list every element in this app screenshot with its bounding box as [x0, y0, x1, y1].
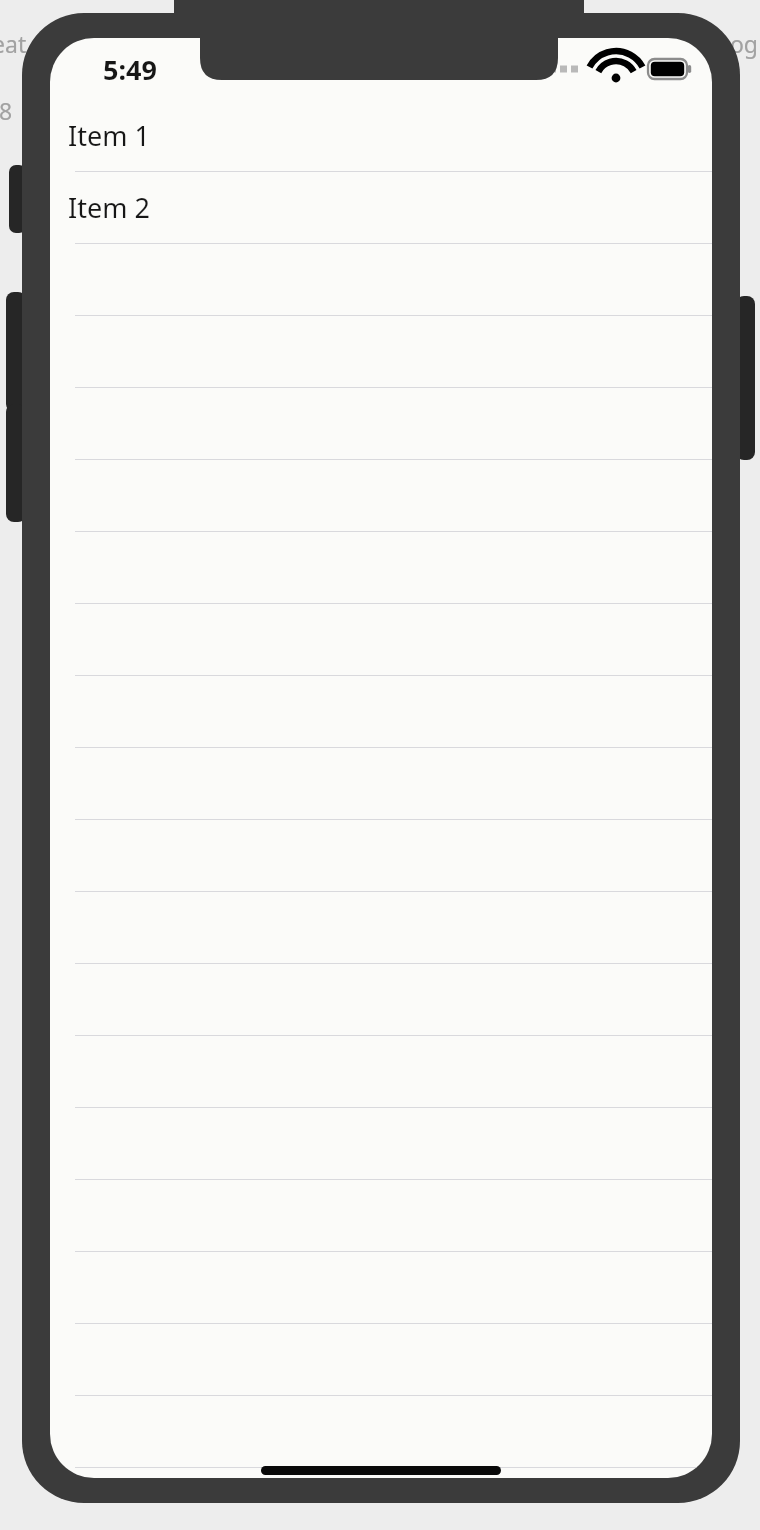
button[interactable] — [50, 388, 712, 460]
button[interactable] — [50, 820, 712, 892]
button[interactable] — [50, 1324, 712, 1396]
button[interactable]: Item 2 — [50, 172, 712, 244]
staticText: oog — [716, 28, 758, 59]
button[interactable] — [50, 604, 712, 676]
staticText: 8 — [0, 95, 13, 126]
staticText: eat — [0, 28, 27, 59]
button[interactable] — [50, 1108, 712, 1180]
other: Signal, Wi-Fi and battery status — [524, 48, 694, 90]
button[interactable] — [50, 964, 712, 1036]
button[interactable] — [50, 244, 712, 316]
button[interactable] — [50, 892, 712, 964]
button[interactable] — [50, 676, 712, 748]
button[interactable] — [50, 748, 712, 820]
button[interactable] — [50, 316, 712, 388]
button[interactable] — [50, 1396, 712, 1468]
button[interactable]: Item 1 — [50, 100, 712, 172]
button[interactable] — [50, 1252, 712, 1324]
button[interactable] — [50, 1180, 712, 1252]
staticText: Item 1 — [68, 117, 150, 154]
button[interactable] — [50, 460, 712, 532]
button[interactable] — [50, 1036, 712, 1108]
button[interactable] — [50, 532, 712, 604]
staticText: Item 2 — [68, 189, 150, 226]
staticText: 5:49 — [103, 51, 157, 88]
